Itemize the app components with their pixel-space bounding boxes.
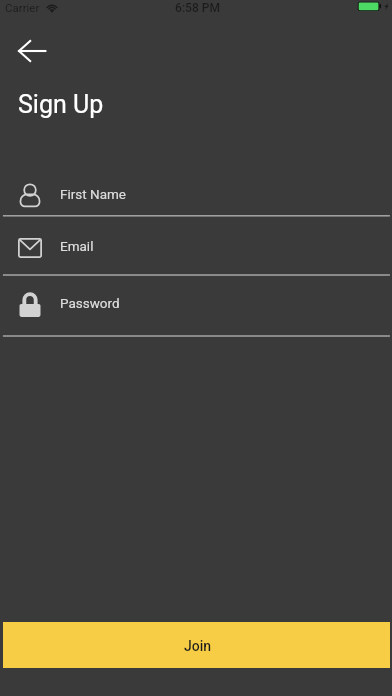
- staticText: Sign Up: [18, 90, 104, 119]
- button[interactable]: Join: [3, 622, 390, 668]
- button[interactable]: Email: [0, 215, 392, 274]
- staticText: Carrier: [5, 1, 40, 14]
- button[interactable]: First Name: [0, 156, 392, 215]
- staticText: 6:58 PM: [175, 1, 220, 15]
- staticText: Password: [60, 295, 120, 311]
- staticText: Email: [60, 238, 94, 254]
- staticText: Join: [184, 638, 212, 654]
- button[interactable]: Back: [8, 27, 56, 75]
- staticText: First Name: [60, 186, 127, 202]
- button[interactable]: Password: [0, 274, 392, 335]
